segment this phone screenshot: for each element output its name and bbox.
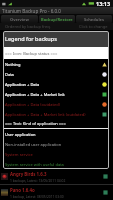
staticText: 1 backups, Latest: 13/05/2011 04:02: [10, 178, 66, 182]
button[interactable]: Application + Data: [3, 79, 109, 89]
staticText: Pano 1.6.4o: [10, 187, 35, 193]
button[interactable]: System service with useful data: [3, 159, 109, 169]
button[interactable]: Angry Birds 1.6.3: [0, 169, 113, 184]
staticText: System service: [5, 152, 99, 157]
button[interactable]: Non-installed user application: [3, 139, 109, 149]
staticText: === Icon: Backup status ===: [5, 51, 58, 56]
button[interactable]: Data: [3, 69, 109, 79]
staticText: 13:13: [96, 0, 111, 7]
staticText: Ordered by backup freq.: [5, 24, 51, 29]
staticText: Application + Data: [5, 82, 99, 87]
staticText: Non-installed user application: [5, 142, 99, 147]
staticText: System service with useful data: [5, 162, 99, 167]
staticText: Click to change: [79, 24, 108, 29]
button[interactable]: System service: [3, 149, 109, 159]
staticText: === Text: Kind of application ===: [5, 121, 66, 126]
staticText: Application + Data + Market link: [5, 92, 99, 97]
button[interactable]: Pano 1.6.4o: [0, 185, 113, 200]
staticText: Application + Data + Market link (outdat…: [5, 112, 99, 117]
staticText: Overview: [10, 17, 29, 22]
button[interactable]: Ordered by backup freq.: [0, 23, 113, 30]
button[interactable]: Nothing: [3, 59, 109, 69]
button[interactable]: Application + Data + Market link: [3, 89, 109, 99]
button[interactable]: User application: [3, 129, 109, 139]
staticText: 1 backup, Latest: 08/05/2011 03:00: [10, 194, 64, 198]
staticText: Nothing: [5, 62, 99, 67]
staticText: Data: [5, 72, 99, 77]
button[interactable]: Application + Data + Market link (outdat…: [3, 109, 109, 119]
button[interactable]: Application + Data (outdated): [3, 99, 109, 109]
button[interactable]: Overview: [1, 15, 38, 23]
staticText: Legend for backups: [5, 35, 57, 43]
staticText: Application + Data (outdated): [5, 102, 99, 107]
staticText: User application: [5, 132, 99, 137]
button[interactable]: Backup/Restore: [39, 15, 75, 23]
staticText: Titanium Backup Pro - 6.0.0: [2, 8, 61, 14]
button[interactable]: Schedules: [76, 15, 112, 23]
staticText: Schedules: [84, 17, 104, 22]
staticText: Angry Birds 1.6.3: [10, 171, 47, 177]
staticText: Backup/Restore: [41, 17, 73, 22]
